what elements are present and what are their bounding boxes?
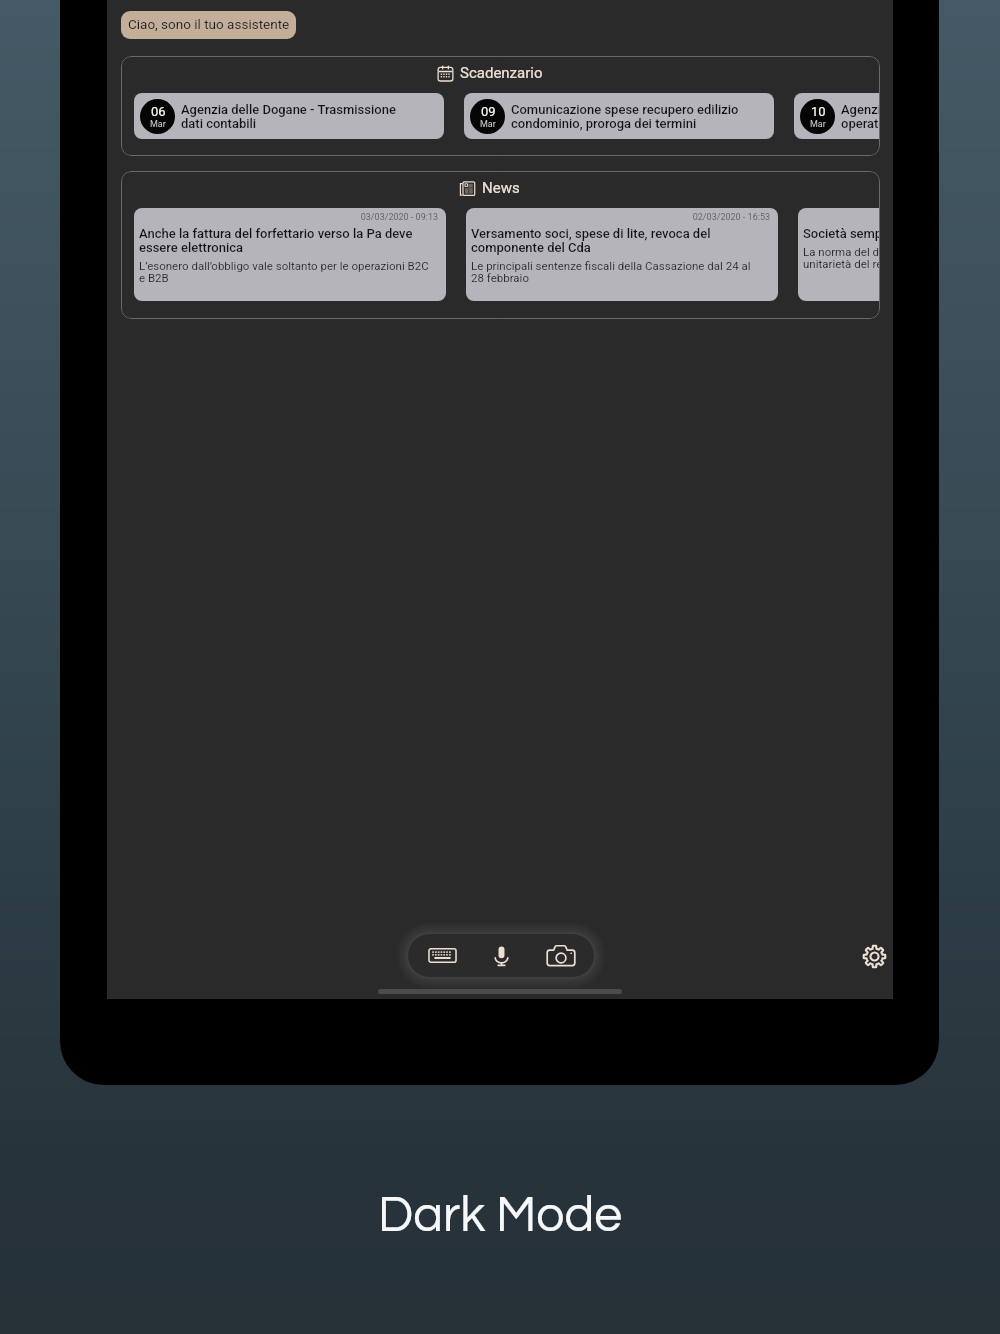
staticText: Le principali sentenze fiscali della Cas… — [471, 259, 761, 285]
button[interactable]: Settings — [852, 934, 896, 978]
button[interactable]: 01/03/2020 - 11:07 — [798, 208, 880, 301]
button[interactable]: 02/03/2020 - 16:53 — [466, 208, 778, 301]
staticText: L’esonero dall’obbligo vale soltanto per… — [139, 259, 429, 285]
button[interactable]: Ciao, sono il tuo assistente — [121, 11, 296, 39]
button[interactable]: 03/03/2020 - 09:13 — [134, 208, 446, 301]
button[interactable]: Keyboard — [416, 934, 468, 977]
button[interactable]: 06 — [134, 93, 444, 139]
button[interactable]: 09 — [464, 93, 774, 139]
staticText: Società sempre più sotto controllo del f… — [803, 226, 880, 241]
button[interactable]: Camera — [535, 934, 587, 977]
staticText: Mar — [810, 119, 826, 130]
staticText: 06 — [151, 104, 166, 119]
button[interactable]: 10 — [794, 93, 880, 139]
staticText: 02/03/2020 - 16:53 — [471, 212, 770, 223]
staticText: La norma del decreto legge ribadisce il … — [803, 245, 880, 271]
staticText: 03/03/2020 - 09:13 — [139, 212, 438, 223]
staticText: 01/03/2020 - 11:07 — [803, 212, 880, 223]
staticText: Versamento soci, spese di lite, revoca d… — [471, 226, 763, 255]
staticText: Comunicazione spese recupero edilizio co… — [511, 102, 739, 132]
staticText: News — [482, 179, 520, 197]
staticText: Dark Mode — [378, 1190, 622, 1242]
staticText: Anche la fattura del forfettario verso l… — [139, 226, 431, 255]
staticText: 09 — [481, 104, 496, 119]
staticText: Mar — [480, 119, 496, 130]
staticText: Agenzia delle Dogane - Trasmissione dati… — [181, 102, 409, 132]
staticText: Agenzia delle Entrate - Comunicazione op… — [841, 102, 880, 132]
staticText: Mar — [150, 119, 166, 130]
staticText: 10 — [811, 104, 826, 119]
staticText: Ciao, sono il tuo assistente — [128, 16, 290, 32]
staticText: Scadenzario — [460, 64, 543, 82]
button[interactable]: Microphone — [475, 934, 527, 977]
